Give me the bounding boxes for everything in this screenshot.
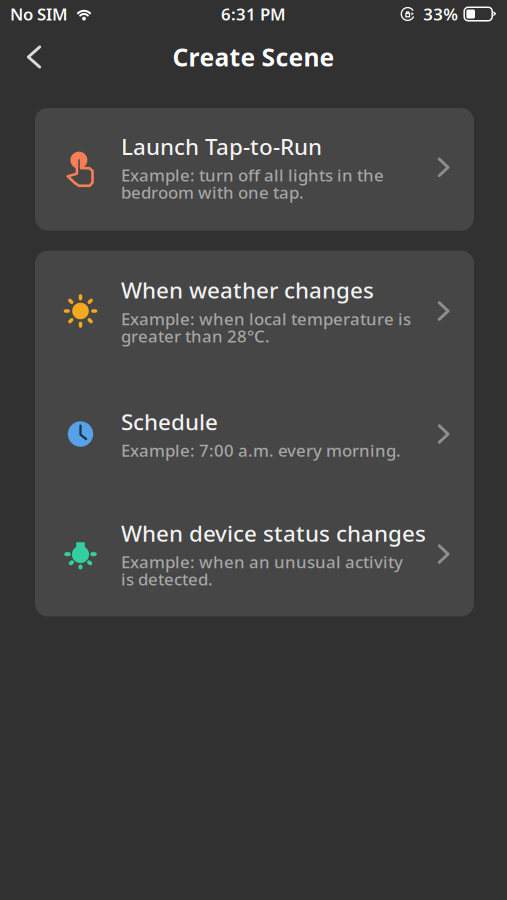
button[interactable]: Back [0, 30, 52, 78]
staticText: greater than 28°C. [121, 324, 270, 347]
staticText: Example: 7:00 a.m. every morning. [121, 439, 401, 462]
staticText: 33% [423, 3, 458, 25]
button[interactable]: When weather changes [35, 251, 474, 378]
staticText: bedroom with one tap. [121, 181, 304, 204]
staticText: When device status changes [121, 518, 426, 548]
staticText: Example: turn off all lights in the [121, 163, 384, 186]
button[interactable]: When device status changes [35, 490, 474, 616]
button[interactable]: Schedule [35, 378, 474, 490]
staticText: Schedule [121, 406, 218, 437]
staticText: No SIM [10, 3, 68, 25]
staticText: Create Scene [172, 40, 334, 74]
staticText: is detected. [121, 567, 213, 590]
staticText: 6:31 PM [221, 3, 286, 25]
staticText: When weather changes [121, 275, 374, 305]
staticText: Launch Tap-to-Run [121, 131, 322, 161]
button[interactable]: Launch Tap-to-Run [35, 108, 474, 231]
staticText: Example: when local temperature is [121, 307, 411, 330]
staticText: Example: when an unusual activity [121, 550, 403, 573]
